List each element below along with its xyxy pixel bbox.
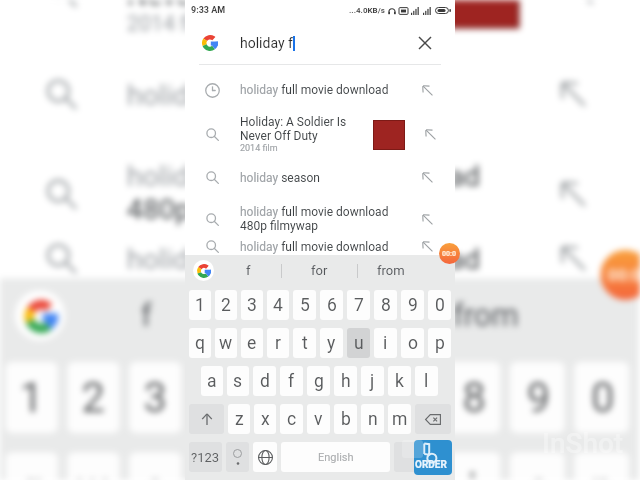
button[interactable]: 9: [510, 362, 565, 433]
button[interactable]: Insert suggestion: [508, 150, 638, 236]
button[interactable]: i: [446, 452, 500, 480]
button[interactable]: l: [415, 366, 438, 396]
button[interactable]: Insert suggestion: [519, 0, 638, 38]
staticText: holiday season: [240, 171, 320, 185]
staticText: 00:0: [442, 250, 457, 258]
button[interactable]: m: [388, 404, 411, 434]
button[interactable]: 7: [347, 290, 370, 320]
button[interactable]: Clear query: [415, 33, 435, 53]
staticText: holiday full movie download: [240, 240, 389, 254]
button[interactable]: a: [201, 366, 223, 396]
button[interactable]: u: [381, 452, 436, 480]
button[interactable]: Insert suggestion: [400, 65, 455, 115]
button[interactable]: Recording timer: [439, 243, 460, 264]
button[interactable]: r: [191, 452, 243, 480]
button[interactable]: y: [317, 452, 372, 480]
staticText: for: [296, 297, 336, 333]
button[interactable]: 7: [381, 362, 436, 433]
button[interactable]: 4: [267, 290, 289, 320]
button[interactable]: u: [347, 328, 370, 358]
button[interactable]: 5: [293, 290, 316, 320]
button[interactable]: 8: [374, 290, 397, 320]
button[interactable]: 6: [320, 290, 343, 320]
button[interactable]: y: [320, 328, 343, 358]
button[interactable]: o: [401, 328, 424, 358]
button[interactable]: holiday full movie download: [185, 65, 455, 115]
button[interactable]: f: [215, 255, 282, 286]
button[interactable]: holiday season: [0, 38, 638, 150]
button[interactable]: 9: [401, 290, 424, 320]
button[interactable]: Google: [193, 260, 214, 281]
button[interactable]: from: [405, 278, 567, 352]
button[interactable]: t: [293, 328, 316, 358]
button[interactable]: c: [280, 404, 303, 434]
button[interactable]: holiday full movie download: [185, 222, 455, 271]
button[interactable]: Insert suggestion: [400, 201, 455, 237]
button[interactable]: 6: [317, 362, 372, 433]
button[interactable]: w: [215, 328, 237, 358]
button[interactable]: holiday full movie download: [0, 150, 638, 236]
button[interactable]: Enter: [394, 442, 451, 472]
button[interactable]: holiday season: [185, 154, 455, 201]
button[interactable]: e: [129, 452, 182, 480]
button[interactable]: 5: [253, 362, 308, 433]
button[interactable]: s: [227, 366, 249, 396]
button[interactable]: r: [267, 328, 289, 358]
staticText: 0: [591, 374, 615, 424]
button[interactable]: Holiday: A Soldier Is: [185, 115, 455, 154]
button[interactable]: k: [388, 366, 411, 396]
button[interactable]: 2: [67, 362, 120, 433]
button[interactable]: Insert suggestion: [405, 115, 455, 154]
button[interactable]: 3: [129, 362, 182, 433]
button[interactable]: w: [67, 452, 120, 480]
button[interactable]: o: [510, 452, 565, 480]
button[interactable]: n: [361, 404, 384, 434]
button[interactable]: Shift: [189, 404, 224, 434]
button[interactable]: 1: [189, 290, 211, 320]
button[interactable]: 0: [428, 290, 451, 320]
button[interactable]: 8: [446, 362, 500, 433]
button[interactable]: h: [334, 366, 357, 396]
button[interactable]: Change language: [253, 442, 277, 472]
button[interactable]: j: [361, 366, 384, 396]
button[interactable]: f: [67, 278, 227, 352]
button[interactable]: p: [428, 328, 451, 358]
button[interactable]: 2: [215, 290, 237, 320]
button[interactable]: holiday full movie download: [185, 201, 455, 237]
button[interactable]: b: [334, 404, 357, 434]
button[interactable]: from: [357, 255, 425, 286]
button[interactable]: Google: [15, 290, 65, 340]
button[interactable]: Symbols: [189, 442, 222, 472]
button[interactable]: Insert suggestion: [508, 38, 638, 150]
button[interactable]: for: [227, 278, 405, 352]
button[interactable]: for: [282, 255, 357, 286]
button[interactable]: Recording timer: [600, 250, 640, 300]
button[interactable]: Insert suggestion: [508, 200, 638, 316]
button[interactable]: x: [254, 404, 276, 434]
button[interactable]: 3: [241, 290, 263, 320]
button[interactable]: f: [280, 366, 303, 396]
staticText: 5: [300, 295, 310, 316]
button[interactable]: Backspace: [415, 404, 451, 434]
button[interactable]: q: [5, 452, 58, 480]
button[interactable]: Insert suggestion: [400, 154, 455, 201]
button[interactable]: 0: [574, 362, 629, 433]
button[interactable]: d: [253, 366, 276, 396]
button[interactable]: g: [307, 366, 330, 396]
button[interactable]: Emoji: [226, 442, 249, 472]
button[interactable]: holiday full movie download: [0, 200, 638, 316]
button[interactable]: p: [574, 452, 629, 480]
button[interactable]: Space: [281, 442, 390, 472]
button[interactable]: 1: [5, 362, 58, 433]
button[interactable]: e: [241, 328, 263, 358]
button[interactable]: Voice Recorder: [414, 440, 452, 475]
button[interactable]: Insert suggestion: [400, 222, 455, 271]
button[interactable]: v: [307, 404, 330, 434]
button[interactable]: q: [189, 328, 211, 358]
button[interactable]: 4: [191, 362, 243, 433]
button[interactable]: z: [228, 404, 250, 434]
button[interactable]: t: [253, 452, 308, 480]
button[interactable]: Holiday: A Soldier Is: [0, 0, 638, 38]
button[interactable]: i: [374, 328, 397, 358]
